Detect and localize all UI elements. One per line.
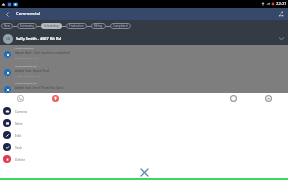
button[interactable]: Call xyxy=(17,95,24,102)
button[interactable]: Estimating xyxy=(17,23,37,29)
button[interactable]: Back xyxy=(0,8,14,20)
staticText: 21 Feb, 2012 12:34 AM xyxy=(15,91,41,94)
staticText: Production xyxy=(69,24,84,28)
staticText: Charles Schwab xyxy=(222,75,240,78)
button[interactable]: Email xyxy=(265,95,272,102)
staticText: Sally Smith - 4667 Kit Rd xyxy=(16,36,61,41)
staticText: Added Related Job xyxy=(15,64,37,67)
button[interactable]: Edit xyxy=(0,129,288,141)
button[interactable]: Added Related Job xyxy=(0,65,288,81)
staticText: Repair Roof - Task has been completed xyxy=(15,51,70,55)
button[interactable]: Status Changed xyxy=(0,47,288,63)
staticText: Note xyxy=(15,121,23,125)
button[interactable]: New xyxy=(1,23,13,29)
staticText: Charles Schwab xyxy=(222,57,240,60)
button[interactable]: Close menu xyxy=(137,165,151,179)
button[interactable]: Note xyxy=(0,117,288,129)
staticText: Commercial xyxy=(16,11,40,17)
staticText: Added Task: Repair Roof xyxy=(15,69,50,73)
button[interactable]: Delete xyxy=(0,153,288,165)
staticText: Added Task: Send Thank You Card xyxy=(15,86,63,90)
button[interactable]: Location xyxy=(52,95,59,102)
button[interactable]: Added Related Job xyxy=(0,82,288,98)
button[interactable]: Message xyxy=(230,95,237,102)
staticText: Completed xyxy=(113,24,128,28)
staticText: SA xyxy=(6,37,10,41)
staticText: Status Changed xyxy=(15,46,34,49)
button[interactable]: Completed xyxy=(110,23,131,29)
button[interactable]: Task xyxy=(0,141,288,153)
staticText: Estimating xyxy=(20,24,34,28)
button[interactable]: Scheduling xyxy=(41,23,62,29)
staticText: Billing xyxy=(94,24,103,28)
button[interactable]: Camera xyxy=(0,105,288,117)
button[interactable]: Production xyxy=(66,23,87,29)
staticText: Camera xyxy=(15,109,28,113)
staticText: 22:21 xyxy=(276,1,287,7)
staticText: Edit xyxy=(15,133,21,137)
button[interactable]: SA xyxy=(0,32,288,45)
staticText: Added Related Job xyxy=(15,81,37,84)
staticText: Friday, 9/18 4:41 PM xyxy=(15,56,38,59)
staticText: Task xyxy=(15,145,22,149)
button[interactable]: Share xyxy=(274,8,288,20)
staticText: New xyxy=(4,24,10,28)
button[interactable]: Billing xyxy=(91,23,106,29)
staticText: 21 Feb, 2012 12:34 AM xyxy=(15,74,41,77)
staticText: Delete xyxy=(15,157,26,161)
staticText: Scheduling xyxy=(44,24,59,28)
staticText: Charles Schwab xyxy=(222,92,240,95)
